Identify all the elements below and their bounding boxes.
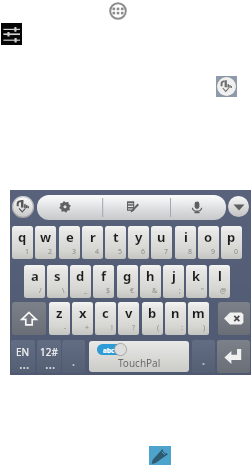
staticText: ) — [203, 323, 206, 333]
staticText: s — [54, 267, 61, 285]
staticText: a — [31, 267, 39, 285]
staticText: n — [171, 304, 180, 322]
button[interactable]: a — [24, 265, 45, 298]
button[interactable]: n — [165, 302, 186, 335]
staticText: 4 — [95, 247, 100, 257]
staticText: h — [146, 267, 155, 285]
staticText: d — [76, 267, 85, 285]
staticText: 0 — [234, 247, 239, 257]
staticText: $ — [106, 286, 111, 296]
staticText: - — [64, 323, 67, 333]
staticText: k — [192, 267, 201, 285]
button[interactable]: t — [105, 226, 126, 259]
button[interactable]: Voice input — [171, 195, 226, 220]
staticText: 6 — [141, 247, 146, 257]
staticText: t — [113, 228, 119, 246]
staticText: TouchPal — [118, 356, 161, 370]
button[interactable]: j — [163, 265, 184, 298]
staticText: 8 — [188, 247, 193, 257]
button[interactable]: u — [151, 226, 172, 259]
staticText: abc — [103, 346, 115, 355]
button[interactable]: EN — [11, 340, 35, 373]
button[interactable]: 12# — [37, 340, 61, 373]
staticText: l — [218, 267, 222, 285]
button[interactable]: p — [221, 226, 242, 259]
button[interactable]: l — [209, 265, 230, 298]
button[interactable]: i — [175, 226, 196, 259]
button[interactable]: d — [70, 265, 91, 298]
staticText: u — [157, 228, 166, 246]
staticText: c — [102, 304, 109, 322]
staticText: 1 — [25, 247, 30, 257]
staticText: ; — [179, 286, 181, 296]
button[interactable]: s — [47, 265, 68, 298]
staticText: " — [201, 286, 204, 296]
staticText: m — [192, 304, 205, 322]
staticText: ! — [111, 323, 113, 333]
button[interactable]: Settings — [37, 195, 103, 220]
staticText: 2 — [48, 247, 53, 257]
staticText: j — [172, 267, 176, 285]
button[interactable]: Enter — [217, 340, 250, 373]
staticText: _ — [84, 286, 88, 296]
staticText: y — [135, 228, 143, 246]
button[interactable]: Backspace — [218, 302, 250, 335]
staticText: g — [123, 267, 132, 285]
staticText: i — [184, 228, 188, 246]
button[interactable]: Touch input — [216, 76, 237, 97]
staticText: 9 — [211, 247, 216, 257]
button[interactable]: m — [188, 302, 209, 335]
button[interactable]: TouchPal menu — [12, 196, 34, 218]
staticText: ( — [157, 323, 160, 333]
staticText: 7 — [164, 247, 169, 257]
button[interactable]: x — [72, 302, 93, 335]
staticText: e — [66, 228, 74, 246]
staticText: b — [148, 304, 157, 322]
staticText: ? — [132, 323, 136, 333]
button[interactable]: Edit text — [103, 195, 171, 220]
button[interactable]: z — [49, 302, 70, 335]
button[interactable]: y — [128, 226, 149, 259]
staticText: / — [39, 286, 42, 296]
button[interactable]: h — [140, 265, 161, 298]
staticText: 5 — [118, 247, 123, 257]
button[interactable]: Period — [192, 340, 215, 373]
staticText: 12# — [40, 345, 58, 359]
staticText: @ — [220, 286, 227, 296]
staticText: x — [79, 304, 87, 322]
staticText: w — [40, 228, 52, 246]
staticText: z — [56, 304, 63, 322]
staticText: r — [90, 228, 96, 246]
button[interactable]: Equalizer settings — [1, 23, 22, 45]
button[interactable]: All apps — [109, 2, 127, 20]
staticText: € — [130, 286, 135, 296]
button[interactable]: e — [59, 226, 80, 259]
staticText: + — [85, 323, 90, 333]
button[interactable]: f — [93, 265, 114, 298]
button[interactable]: Space — [89, 341, 189, 372]
button[interactable]: q — [12, 226, 33, 259]
button[interactable]: c — [95, 302, 116, 335]
staticText: \ — [62, 286, 65, 296]
button[interactable]: o — [198, 226, 219, 259]
staticText: EN — [16, 345, 30, 359]
button[interactable]: g — [117, 265, 138, 298]
button[interactable]: Comma — [62, 340, 85, 373]
button[interactable]: r — [82, 226, 103, 259]
staticText: & — [152, 286, 158, 296]
staticText: p — [227, 228, 236, 246]
staticText: v — [125, 304, 133, 322]
button[interactable]: b — [142, 302, 163, 335]
staticText: o — [204, 228, 213, 246]
button[interactable]: Compose — [149, 446, 171, 465]
button[interactable]: Shift — [12, 302, 46, 335]
button[interactable]: k — [186, 265, 207, 298]
staticText: : — [181, 323, 183, 333]
button[interactable]: w — [35, 226, 56, 259]
staticText: q — [18, 228, 27, 246]
staticText: 3 — [72, 247, 77, 257]
button[interactable]: v — [118, 302, 139, 335]
staticText: f — [101, 267, 107, 285]
button[interactable]: Hide keyboard — [228, 196, 249, 217]
